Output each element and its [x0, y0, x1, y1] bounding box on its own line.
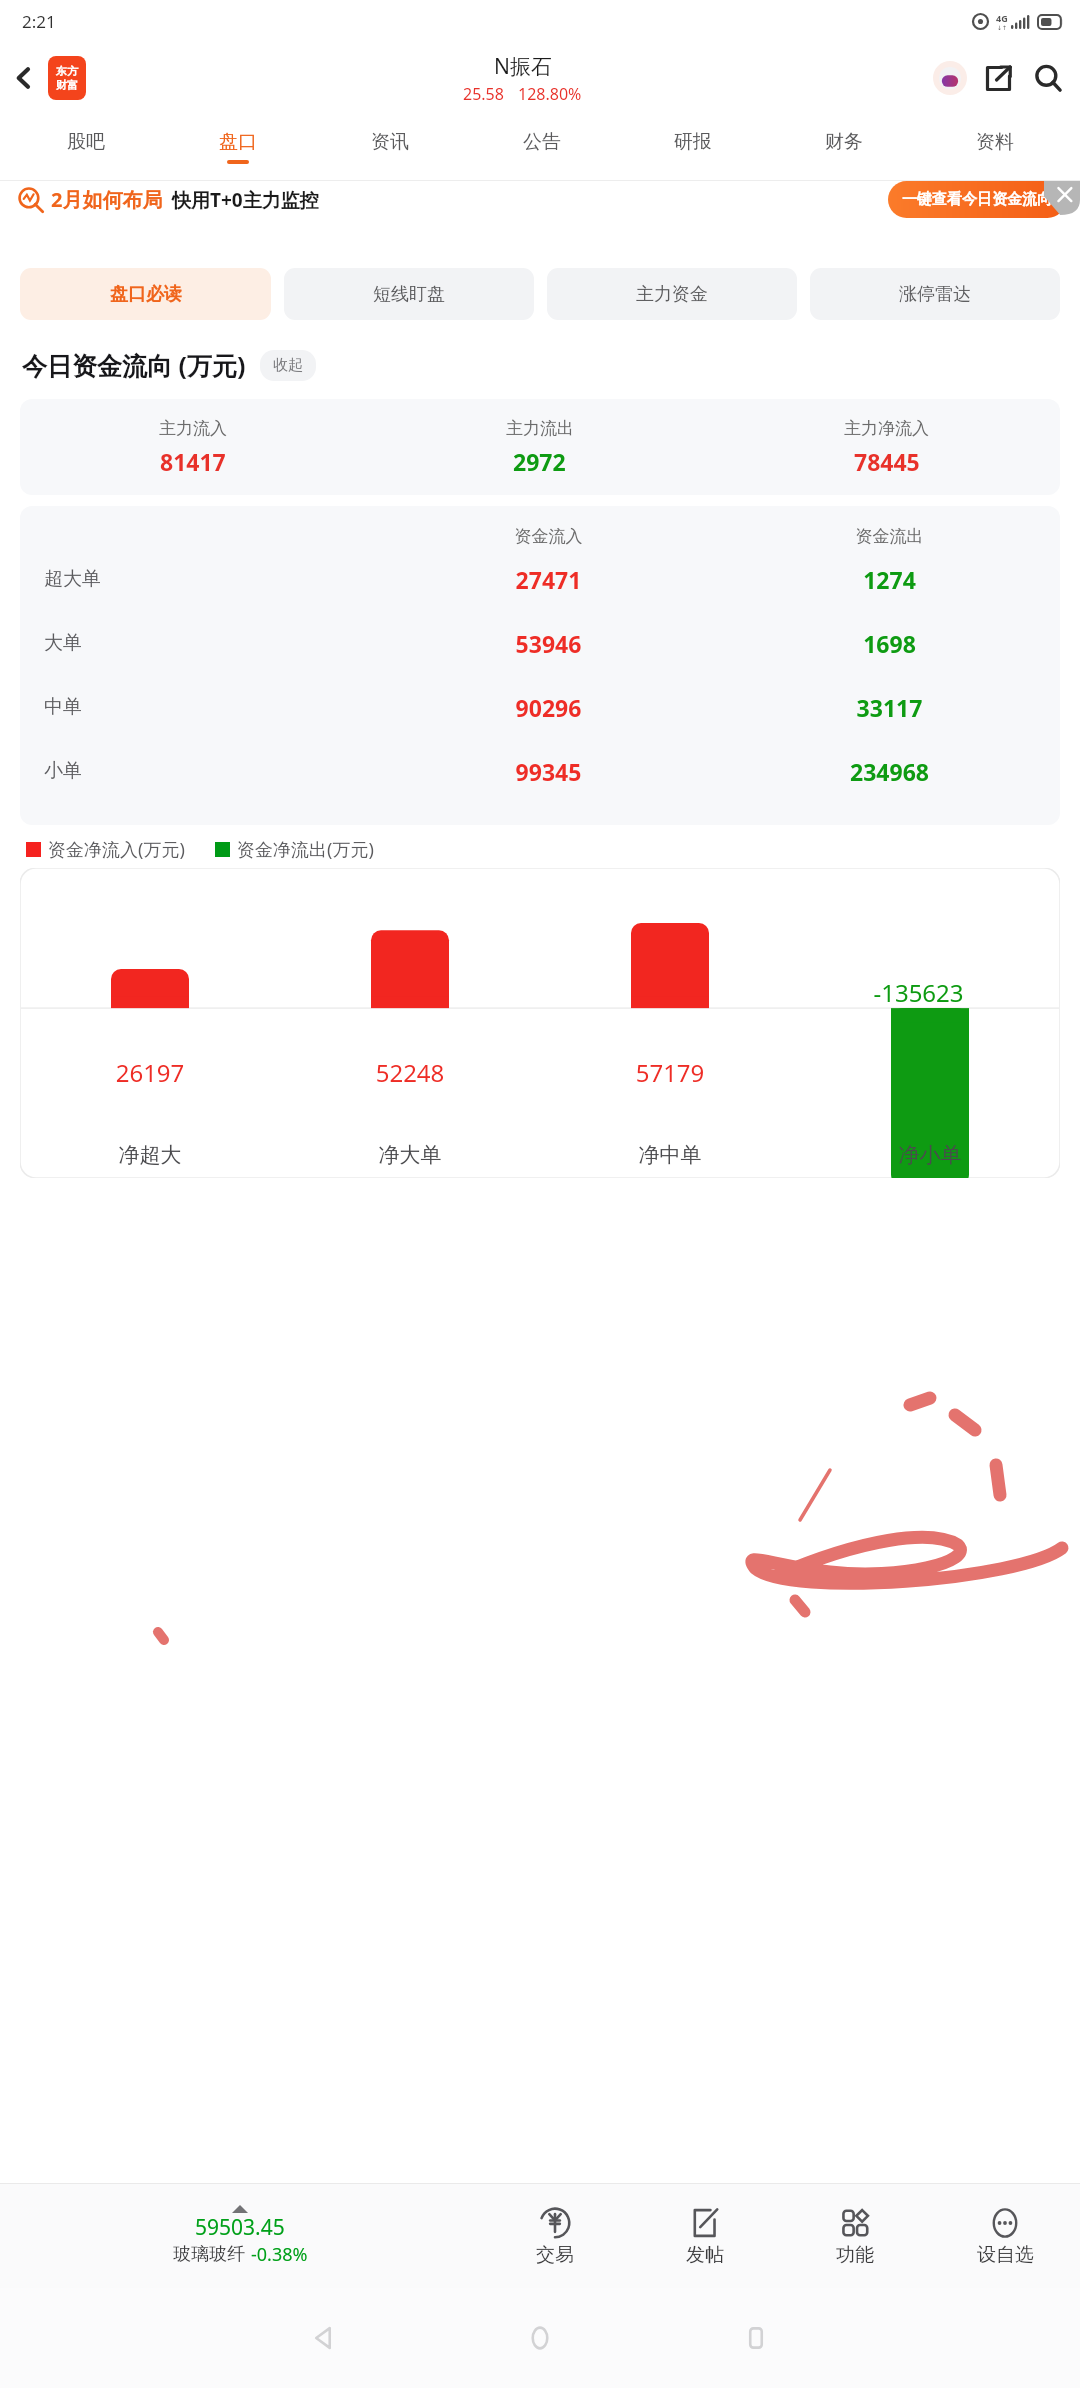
staticText: 股吧	[67, 130, 105, 154]
button[interactable]: Home	[432, 2325, 648, 2351]
staticText: 一键查看今日资金流向	[902, 190, 1052, 209]
staticText: 25.58	[463, 83, 504, 105]
staticText: 234968	[719, 756, 1060, 787]
button[interactable]: 交易	[480, 2206, 630, 2267]
staticText: 27471	[378, 564, 719, 595]
staticText: 资金流出	[719, 526, 1060, 547]
button[interactable]: 功能	[780, 2206, 930, 2267]
button[interactable]: 59503.45	[0, 2205, 480, 2267]
button[interactable]: 盘口	[162, 114, 314, 180]
staticText: 主力资金	[636, 283, 708, 306]
button[interactable]: Back	[216, 2325, 432, 2351]
staticText: 财务	[825, 130, 863, 154]
button[interactable]: 收起	[260, 350, 316, 381]
staticText: 128.80%	[518, 83, 582, 105]
staticText: 公告	[523, 130, 561, 154]
button[interactable]: 主力资金	[547, 268, 797, 320]
staticText: 超大单	[44, 567, 101, 591]
button[interactable]: 资讯	[314, 114, 466, 180]
button[interactable]: 资料	[919, 114, 1070, 180]
staticText: N振石	[494, 52, 552, 81]
button[interactable]: Assistant	[926, 54, 974, 102]
button[interactable]: 东方财富	[48, 56, 86, 100]
staticText: 78445	[854, 446, 920, 477]
staticText: 净超大	[20, 1142, 280, 1168]
staticText: 1698	[719, 628, 1060, 659]
staticText: 净大单	[280, 1142, 540, 1168]
staticText: 57179	[540, 1056, 800, 1089]
staticText: 资金净流入(万元)	[48, 837, 185, 862]
staticText: 90296	[378, 692, 719, 723]
staticText: 4G	[996, 12, 1008, 24]
staticText: 功能	[836, 2243, 874, 2267]
button[interactable]: 财务	[768, 114, 919, 180]
staticText: 资金流入	[378, 526, 719, 547]
button[interactable]: 研报	[617, 114, 768, 180]
button[interactable]: 发帖	[630, 2206, 780, 2267]
staticText: 资讯	[371, 130, 409, 154]
staticText: -0.38%	[251, 2242, 308, 2267]
staticText: 2:21	[22, 10, 56, 33]
staticText: 净中单	[540, 1142, 800, 1168]
button[interactable]: 涨停雷达	[810, 268, 1060, 320]
button[interactable]: Search	[1022, 52, 1074, 104]
staticText: 净小单	[800, 1142, 1060, 1168]
button[interactable]: 一键查看今日资金流向	[888, 181, 1066, 218]
staticText: 52248	[280, 1056, 540, 1089]
staticText: 短线盯盘	[373, 283, 445, 306]
button[interactable]: 公告	[466, 114, 617, 180]
staticText: 交易	[536, 2243, 574, 2267]
staticText: 盘口	[219, 130, 257, 154]
staticText: 收起	[273, 356, 303, 375]
staticText: 1274	[719, 564, 1060, 595]
button[interactable]: 设自选	[930, 2206, 1080, 2267]
button[interactable]: Close ad	[1044, 181, 1080, 215]
staticText: 大单	[44, 631, 82, 655]
staticText: 主力流出	[506, 418, 574, 439]
button[interactable]: Share	[974, 54, 1022, 102]
button[interactable]: 股吧	[10, 114, 162, 180]
staticText: 33117	[719, 692, 1060, 723]
button[interactable]: Recents	[648, 2326, 864, 2350]
staticText: ↓↑	[997, 24, 1008, 31]
staticText: 今日资金流向 (万元)	[22, 348, 246, 382]
staticText: 59503.45	[195, 2213, 285, 2242]
staticText: 26197	[20, 1056, 280, 1089]
button[interactable]: 短线盯盘	[284, 268, 534, 320]
staticText: 53946	[378, 628, 719, 659]
staticText: 东方	[56, 64, 78, 78]
staticText: 2月如何布局	[51, 186, 163, 213]
staticText: 2972	[513, 446, 566, 477]
staticText: 81417	[160, 446, 226, 477]
button[interactable]: 盘口必读	[20, 268, 271, 320]
staticText: 小单	[44, 759, 82, 783]
staticText: 设自选	[977, 2243, 1034, 2267]
staticText: 99345	[378, 756, 719, 787]
button[interactable]: Back	[0, 54, 48, 102]
staticText: 发帖	[686, 2243, 724, 2267]
staticText: 研报	[674, 130, 712, 154]
staticText: 盘口必读	[110, 283, 182, 306]
staticText: 主力净流入	[844, 418, 929, 439]
staticText: 财富	[56, 78, 78, 92]
staticText: 快用T+0主力监控	[172, 187, 319, 213]
staticText: 中单	[44, 695, 82, 719]
staticText: 主力流入	[159, 418, 227, 439]
staticText: 资料	[976, 130, 1014, 154]
staticText: -135623	[777, 976, 1060, 1009]
staticText: 资金净流出(万元)	[237, 837, 374, 862]
staticText: 涨停雷达	[899, 283, 971, 306]
staticText: 玻璃玻纤	[173, 2243, 245, 2266]
